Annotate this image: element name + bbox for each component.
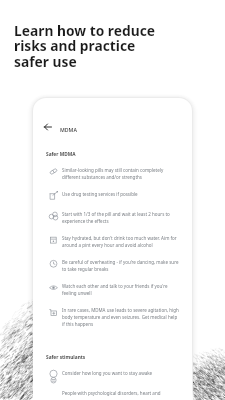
staticText: Use drug testing services if possible xyxy=(62,191,138,197)
button[interactable]: Watch each other and talk to your friend… xyxy=(33,283,192,307)
staticText: People with psychological disorders, hea… xyxy=(62,390,161,396)
staticText: In rare cases, MDMA use leads to severe … xyxy=(62,307,181,327)
button[interactable]: Start with 1/3 of the pill and wait at l… xyxy=(33,211,192,235)
button[interactable]: Be careful of overheating - if you're da… xyxy=(33,259,192,283)
staticText: Learn how to reduce risks and practice s… xyxy=(14,21,164,71)
button[interactable]: Consider how long you want to stay awake xyxy=(33,370,192,390)
staticText: Consider how long you want to stay awake xyxy=(62,370,153,376)
staticText: Similar-looking pills may still contain … xyxy=(62,167,181,180)
staticText: Start with 1/3 of the pill and wait at l… xyxy=(62,211,181,224)
staticText: Safer stimulants xyxy=(46,354,86,361)
button[interactable]: Stay hydrated, but don't drink too much … xyxy=(33,235,192,259)
button[interactable]: In rare cases, MDMA use leads to severe … xyxy=(33,307,192,338)
staticText: MDMA xyxy=(60,126,77,133)
staticText: Stay hydrated, but don't drink too much … xyxy=(62,235,181,248)
button[interactable]: People with psychological disorders, hea… xyxy=(33,390,192,400)
button[interactable]: Similar-looking pills may still contain … xyxy=(33,167,192,191)
staticText: Be careful of overheating - if you're da… xyxy=(62,259,181,272)
staticText: Watch each other and talk to your friend… xyxy=(62,283,181,296)
button[interactable]: Use drug testing services if possible xyxy=(33,191,192,211)
button[interactable]: Back xyxy=(44,123,52,131)
staticText: Safer MDMA xyxy=(46,151,76,158)
